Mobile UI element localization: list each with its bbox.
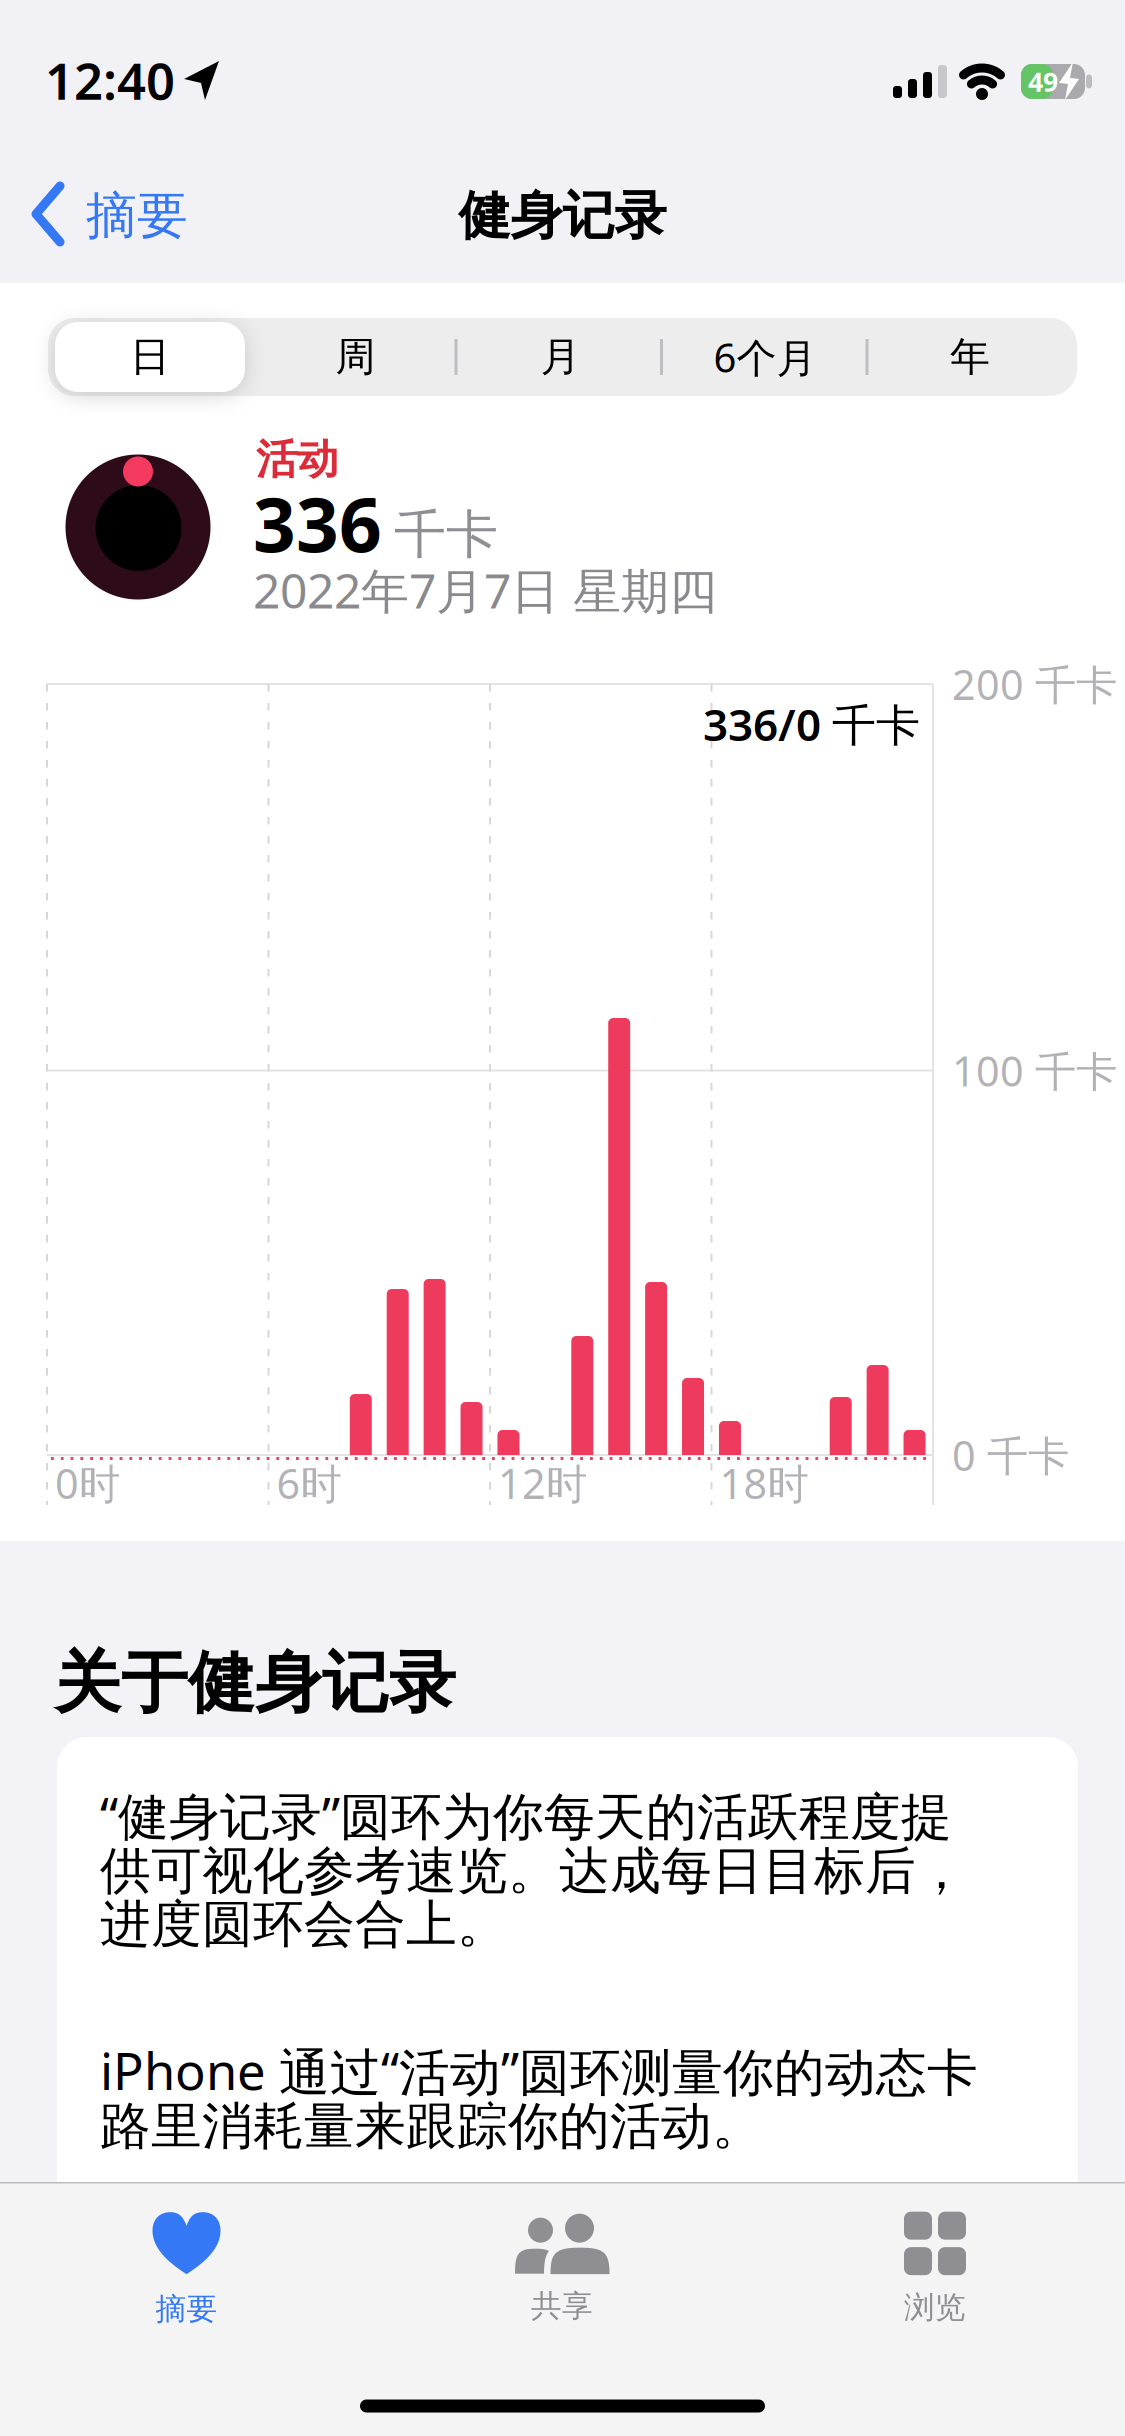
staticText: 12时 [498,1456,587,1510]
staticText: 6时 [276,1456,341,1510]
staticText: 年 [950,332,990,381]
button[interactable]: 摘要 [152,2212,220,2328]
staticText: 千卡 [394,503,498,567]
staticText: iPhone 通过“活动”圆环测量你的动态卡 路里消耗量来跟踪你的活动。 [100,2037,978,2157]
staticText: 336 [253,473,382,573]
staticText: 活动 [256,434,338,485]
staticText: 336/0 千卡 [703,695,920,753]
staticText: 摘要 [86,185,188,247]
staticText: 日 [130,332,170,381]
staticText: 6个月 [713,330,816,383]
staticText: 2022年7月7日 星期四 [253,558,717,622]
staticText: 12:40 [45,46,175,114]
staticText: 月 [540,332,580,381]
staticText: “健身记录”圆环为你每天的活跃程度提 供可视化参考速览。达成每日目标后， 进度圆… [100,1782,967,1955]
staticText: 关于健身记录 [54,1642,456,1724]
staticText: 摘要 [155,2290,217,2328]
staticText: 健身记录 [458,184,666,248]
button[interactable]: 6个月 [667,318,863,396]
button[interactable]: 年 [872,318,1068,396]
button[interactable]: 月 [462,318,658,396]
staticText: 0 千卡 [952,1428,1069,1482]
button[interactable]: 周 [257,318,453,396]
staticText: 49 [1028,64,1058,99]
staticText: 18时 [719,1456,808,1510]
button[interactable]: 摘要 [34,185,188,247]
button[interactable]: 浏览 [904,2212,966,2326]
staticText: 周 [335,332,375,381]
staticText: 100 千卡 [952,1043,1117,1098]
staticText: 浏览 [904,2289,966,2326]
button[interactable]: 日 [52,318,248,396]
staticText: 共享 [531,2287,593,2325]
staticText: 200 千卡 [952,657,1117,711]
button[interactable]: 共享 [514,2211,610,2325]
staticText: 0时 [55,1456,120,1510]
